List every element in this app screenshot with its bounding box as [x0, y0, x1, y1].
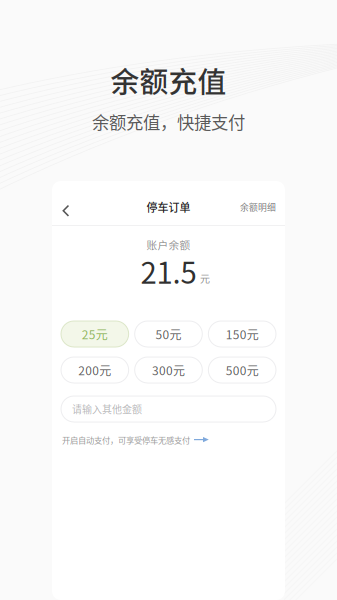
- button[interactable]: Back: [62, 196, 84, 226]
- button[interactable]: 开启自动支付，可享受停车无感支付: [62, 433, 275, 447]
- staticText: 余额充值: [110, 59, 226, 101]
- staticText: 25元: [82, 325, 108, 343]
- staticText: 开启自动支付，可享受停车无感支付: [62, 434, 190, 446]
- staticText: 500元: [226, 361, 259, 379]
- button[interactable]: 300元: [135, 357, 202, 383]
- staticText: 余额充值，快捷支付: [92, 109, 245, 134]
- staticText: 300元: [152, 361, 185, 379]
- button[interactable]: 请输入其他金额: [61, 396, 276, 422]
- staticText: 停车订单: [146, 199, 190, 215]
- staticText: 元: [200, 271, 210, 286]
- staticText: 请输入其他金额: [72, 402, 142, 416]
- staticText: 150元: [226, 325, 259, 343]
- button[interactable]: 500元: [208, 357, 276, 383]
- button[interactable]: 25元: [61, 321, 129, 347]
- staticText: 账户余额: [146, 237, 190, 252]
- staticText: 50元: [155, 325, 181, 343]
- staticText: 21.5: [140, 250, 196, 292]
- staticText: 余额明细: [240, 201, 276, 213]
- staticText: 200元: [78, 361, 111, 379]
- button[interactable]: 50元: [135, 321, 202, 347]
- button[interactable]: 200元: [61, 357, 129, 383]
- button[interactable]: 余额明细: [236, 195, 276, 219]
- button[interactable]: 150元: [208, 321, 276, 347]
